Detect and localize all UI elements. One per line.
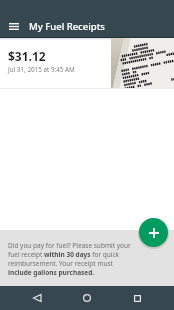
button[interactable]: $31.12	[0, 38, 174, 88]
staticText: Jul 31, 2015 at 9:45 AM	[8, 65, 75, 74]
button[interactable]: Add receipt	[139, 218, 168, 247]
staticText: My Fuel Receipts	[29, 20, 105, 33]
button[interactable]: Menu	[4, 16, 24, 36]
button[interactable]: Back	[24, 286, 50, 310]
staticText: Did you pay for fuel? Please submit your…	[8, 241, 135, 277]
button[interactable]: Home	[74, 286, 100, 310]
staticText: $31.12	[8, 48, 46, 64]
button[interactable]: Recent apps	[124, 286, 150, 310]
